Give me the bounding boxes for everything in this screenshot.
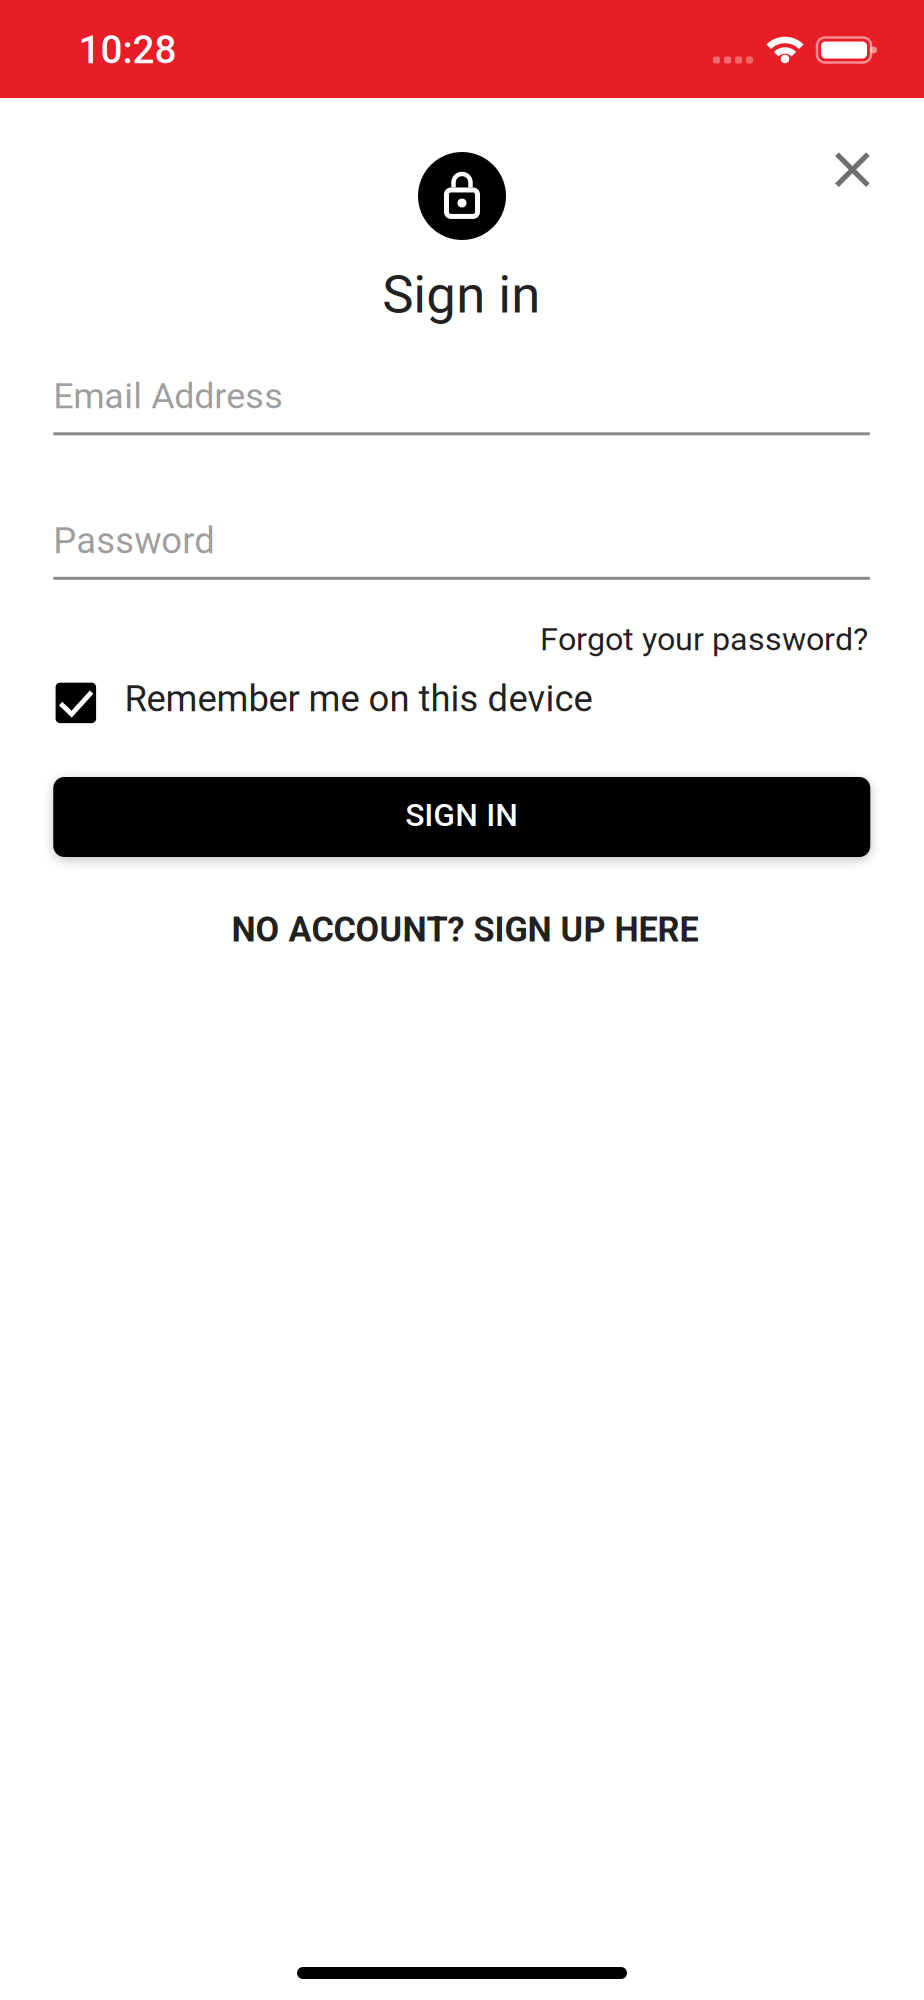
button[interactable]: Close: [823, 140, 882, 199]
button[interactable]: SIGN IN: [53, 777, 870, 857]
staticText: Password: [53, 519, 215, 562]
button[interactable]: Forgot your password?: [540, 620, 868, 658]
staticText: Sign in: [382, 263, 540, 325]
staticText: Forgot your password?: [540, 620, 868, 658]
button[interactable]: Password: [53, 514, 870, 580]
staticText: Remember me on this device: [125, 677, 593, 720]
button[interactable]: NO ACCOUNT? SIGN UP HERE: [231, 910, 698, 950]
staticText: 10:28: [78, 27, 176, 73]
staticText: SIGN IN: [405, 796, 518, 834]
staticText: NO ACCOUNT? SIGN UP HERE: [231, 910, 698, 950]
button[interactable]: Remember me on this device: [56, 682, 593, 724]
staticText: Email Address: [53, 375, 283, 417]
button[interactable]: Email Address: [53, 369, 870, 435]
